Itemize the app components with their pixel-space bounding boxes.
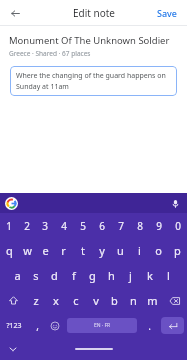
staticText: s — [33, 268, 39, 283]
button[interactable]: ?123 — [0, 313, 28, 338]
button[interactable]: r — [54, 238, 73, 263]
staticText: z — [33, 293, 39, 308]
staticText: p — [174, 243, 181, 258]
staticText: 1 — [6, 219, 12, 233]
button[interactable]: e — [36, 238, 54, 263]
button[interactable]: Shift — [0, 288, 26, 313]
staticText: q — [6, 243, 13, 258]
button[interactable]: Hide keyboard — [8, 344, 18, 354]
button[interactable]: g — [83, 263, 102, 288]
button[interactable]: q — [0, 238, 18, 263]
staticText: r — [61, 243, 66, 258]
button[interactable]: 0 — [168, 213, 187, 238]
staticText: y — [99, 243, 105, 258]
button[interactable]: 2 — [18, 213, 36, 238]
staticText: 7 — [118, 219, 124, 233]
staticText: o — [155, 243, 162, 258]
button[interactable]: a — [8, 263, 26, 288]
staticText: 8 — [137, 219, 143, 233]
staticText: . — [148, 319, 151, 333]
button[interactable]: 8 — [130, 213, 149, 238]
button[interactable]: h — [102, 263, 121, 288]
staticText: Monument Of The Unknown Soldier — [9, 34, 170, 47]
staticText: Save — [157, 7, 178, 19]
staticText: 0 — [175, 219, 181, 233]
staticText: 5 — [80, 219, 86, 233]
staticText: m — [147, 293, 158, 308]
staticText: t — [81, 243, 85, 258]
button[interactable]: Space — [67, 318, 137, 333]
button[interactable]: u — [111, 238, 130, 263]
staticText: , — [36, 319, 39, 333]
staticText: g — [89, 268, 96, 283]
button[interactable]: 6 — [92, 213, 111, 238]
staticText: b — [111, 293, 118, 308]
button[interactable]: z — [26, 288, 46, 313]
button[interactable]: Enter — [161, 317, 184, 334]
button[interactable]: , — [28, 313, 46, 338]
button[interactable]: 7 — [111, 213, 130, 238]
staticText: j — [129, 268, 132, 283]
button[interactable]: Backspace — [162, 288, 187, 313]
staticText: k — [147, 268, 153, 283]
staticText: d — [51, 268, 58, 283]
staticText: n — [130, 293, 137, 308]
staticText: 4 — [61, 219, 67, 233]
button[interactable]: 4 — [54, 213, 73, 238]
button[interactable]: Back — [4, 2, 26, 24]
button[interactable]: f — [64, 263, 83, 288]
button[interactable]: w — [18, 238, 36, 263]
button[interactable]: c — [66, 288, 86, 313]
staticText: v — [93, 293, 99, 308]
button[interactable]: . — [140, 313, 158, 338]
button[interactable]: Emoji — [46, 313, 64, 338]
button[interactable]: y — [92, 238, 111, 263]
staticText: e — [42, 243, 49, 258]
staticText: Where the changing of the guard happens … — [16, 71, 171, 91]
staticText: 3 — [42, 219, 48, 233]
button[interactable]: Where the changing of the guard happens … — [10, 66, 177, 96]
button[interactable]: Save — [152, 4, 183, 22]
staticText: u — [117, 243, 124, 258]
button[interactable]: 3 — [36, 213, 54, 238]
button[interactable]: i — [130, 238, 149, 263]
button[interactable]: k — [140, 263, 159, 288]
button[interactable]: n — [124, 288, 143, 313]
button[interactable]: 1 — [0, 213, 18, 238]
button[interactable]: l — [159, 263, 178, 288]
button[interactable]: m — [143, 288, 162, 313]
staticText: f — [72, 268, 76, 283]
staticText: 6 — [99, 219, 105, 233]
button[interactable]: s — [26, 263, 45, 288]
button[interactable]: t — [73, 238, 92, 263]
staticText: 2 — [24, 219, 30, 233]
staticText: Greece · Shared · 67 places — [9, 49, 91, 58]
staticText: ?123 — [6, 321, 22, 331]
button[interactable]: p — [168, 238, 187, 263]
button[interactable]: 5 — [73, 213, 92, 238]
staticText: w — [23, 243, 32, 258]
button[interactable]: d — [45, 263, 64, 288]
staticText: l — [167, 268, 170, 283]
button[interactable]: 9 — [149, 213, 168, 238]
button[interactable]: j — [121, 263, 140, 288]
staticText: x — [53, 293, 59, 308]
button[interactable]: v — [86, 288, 105, 313]
button[interactable]: b — [105, 288, 124, 313]
staticText: h — [108, 268, 115, 283]
staticText: i — [138, 243, 141, 258]
staticText: EN · FR — [94, 322, 111, 329]
staticText: c — [73, 293, 79, 308]
staticText: Edit note — [73, 6, 115, 20]
staticText: 9 — [156, 219, 162, 233]
button[interactable]: Voice input — [170, 198, 181, 209]
button[interactable]: x — [46, 288, 66, 313]
staticText: a — [14, 268, 21, 283]
button[interactable]: o — [149, 238, 168, 263]
button[interactable]: Google — [5, 197, 18, 210]
